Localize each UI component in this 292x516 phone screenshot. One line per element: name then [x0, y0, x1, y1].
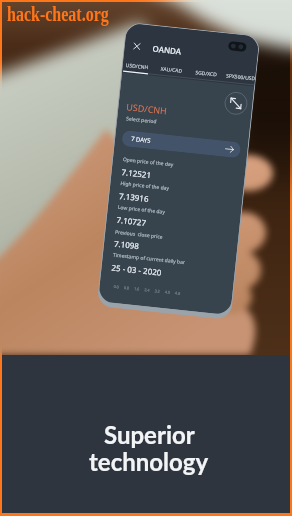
staticText: 25 - 03 - 2020: [111, 262, 163, 278]
staticText: Superior: [104, 420, 195, 449]
staticText: Timestamp of current daily bar: [112, 252, 186, 266]
staticText: Low price of the day: [117, 204, 166, 216]
button[interactable]: SGD/XCD: [194, 66, 219, 82]
staticText: technology: [89, 447, 209, 476]
button[interactable]: SPX500/USD: [223, 69, 256, 85]
button[interactable]: 7 DAYS: [121, 130, 241, 158]
staticText: SGD/XCD: [195, 69, 218, 78]
staticText: 7.13916: [118, 190, 149, 204]
button[interactable]: Close: [130, 37, 145, 52]
staticText: Previous close price: [115, 229, 163, 241]
staticText: XAU/CAD: [160, 66, 183, 75]
staticText: Select period: [126, 115, 157, 125]
staticText: 7.12521: [121, 166, 152, 180]
staticText: USD/CNH: [125, 62, 149, 71]
staticText: Open price of the day: [122, 156, 174, 168]
button[interactable]: XAU/CAD: [159, 62, 184, 78]
staticText: OANDA: [152, 43, 182, 57]
staticText: 7 DAYS: [131, 135, 151, 145]
staticText: 7.10727: [116, 214, 147, 228]
staticText: SPX500/USD: [226, 72, 255, 82]
staticText: hack-cheat.org: [7, 3, 109, 25]
staticText: High price of the day: [120, 180, 169, 192]
staticText: 0.0 0.8 1.6 2.4 3.2 4.0 4.8: [113, 284, 181, 296]
staticText: 7.1098: [113, 238, 140, 251]
staticText: USD/CNH: [126, 100, 168, 116]
button[interactable]: USD/CNH: [124, 59, 149, 74]
